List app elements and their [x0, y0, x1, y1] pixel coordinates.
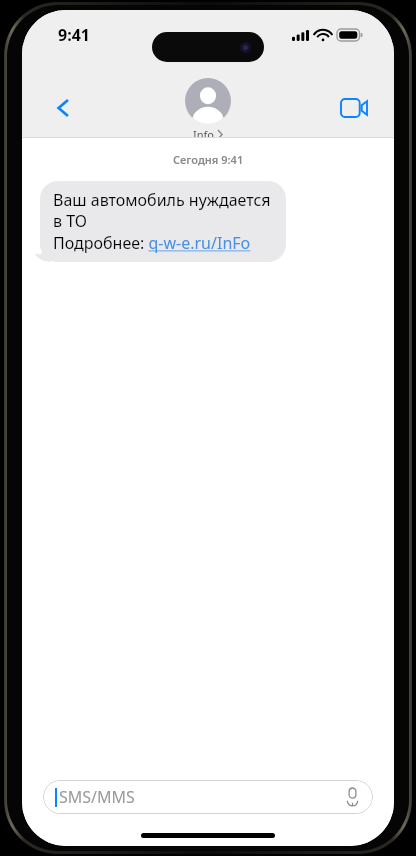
button[interactable]: SMS/MMS [43, 780, 373, 814]
button[interactable]: Back [44, 88, 84, 128]
button[interactable]: Info [185, 78, 231, 142]
button[interactable]: FaceTime video call [334, 88, 374, 128]
staticText: Info [193, 127, 214, 142]
staticText: Ваш автомобиль нуждается в ТО [53, 189, 273, 232]
staticText: 9:41 [58, 24, 90, 46]
other: Voice message [341, 786, 363, 808]
button[interactable]: Ваш автомобиль нуждается в ТО [34, 181, 286, 262]
staticText: SMS/MMS [59, 786, 341, 808]
staticText: Сегодня 9:41 [173, 152, 244, 167]
staticText: Подробнее: q-w-e.ru/InFo [53, 232, 251, 254]
